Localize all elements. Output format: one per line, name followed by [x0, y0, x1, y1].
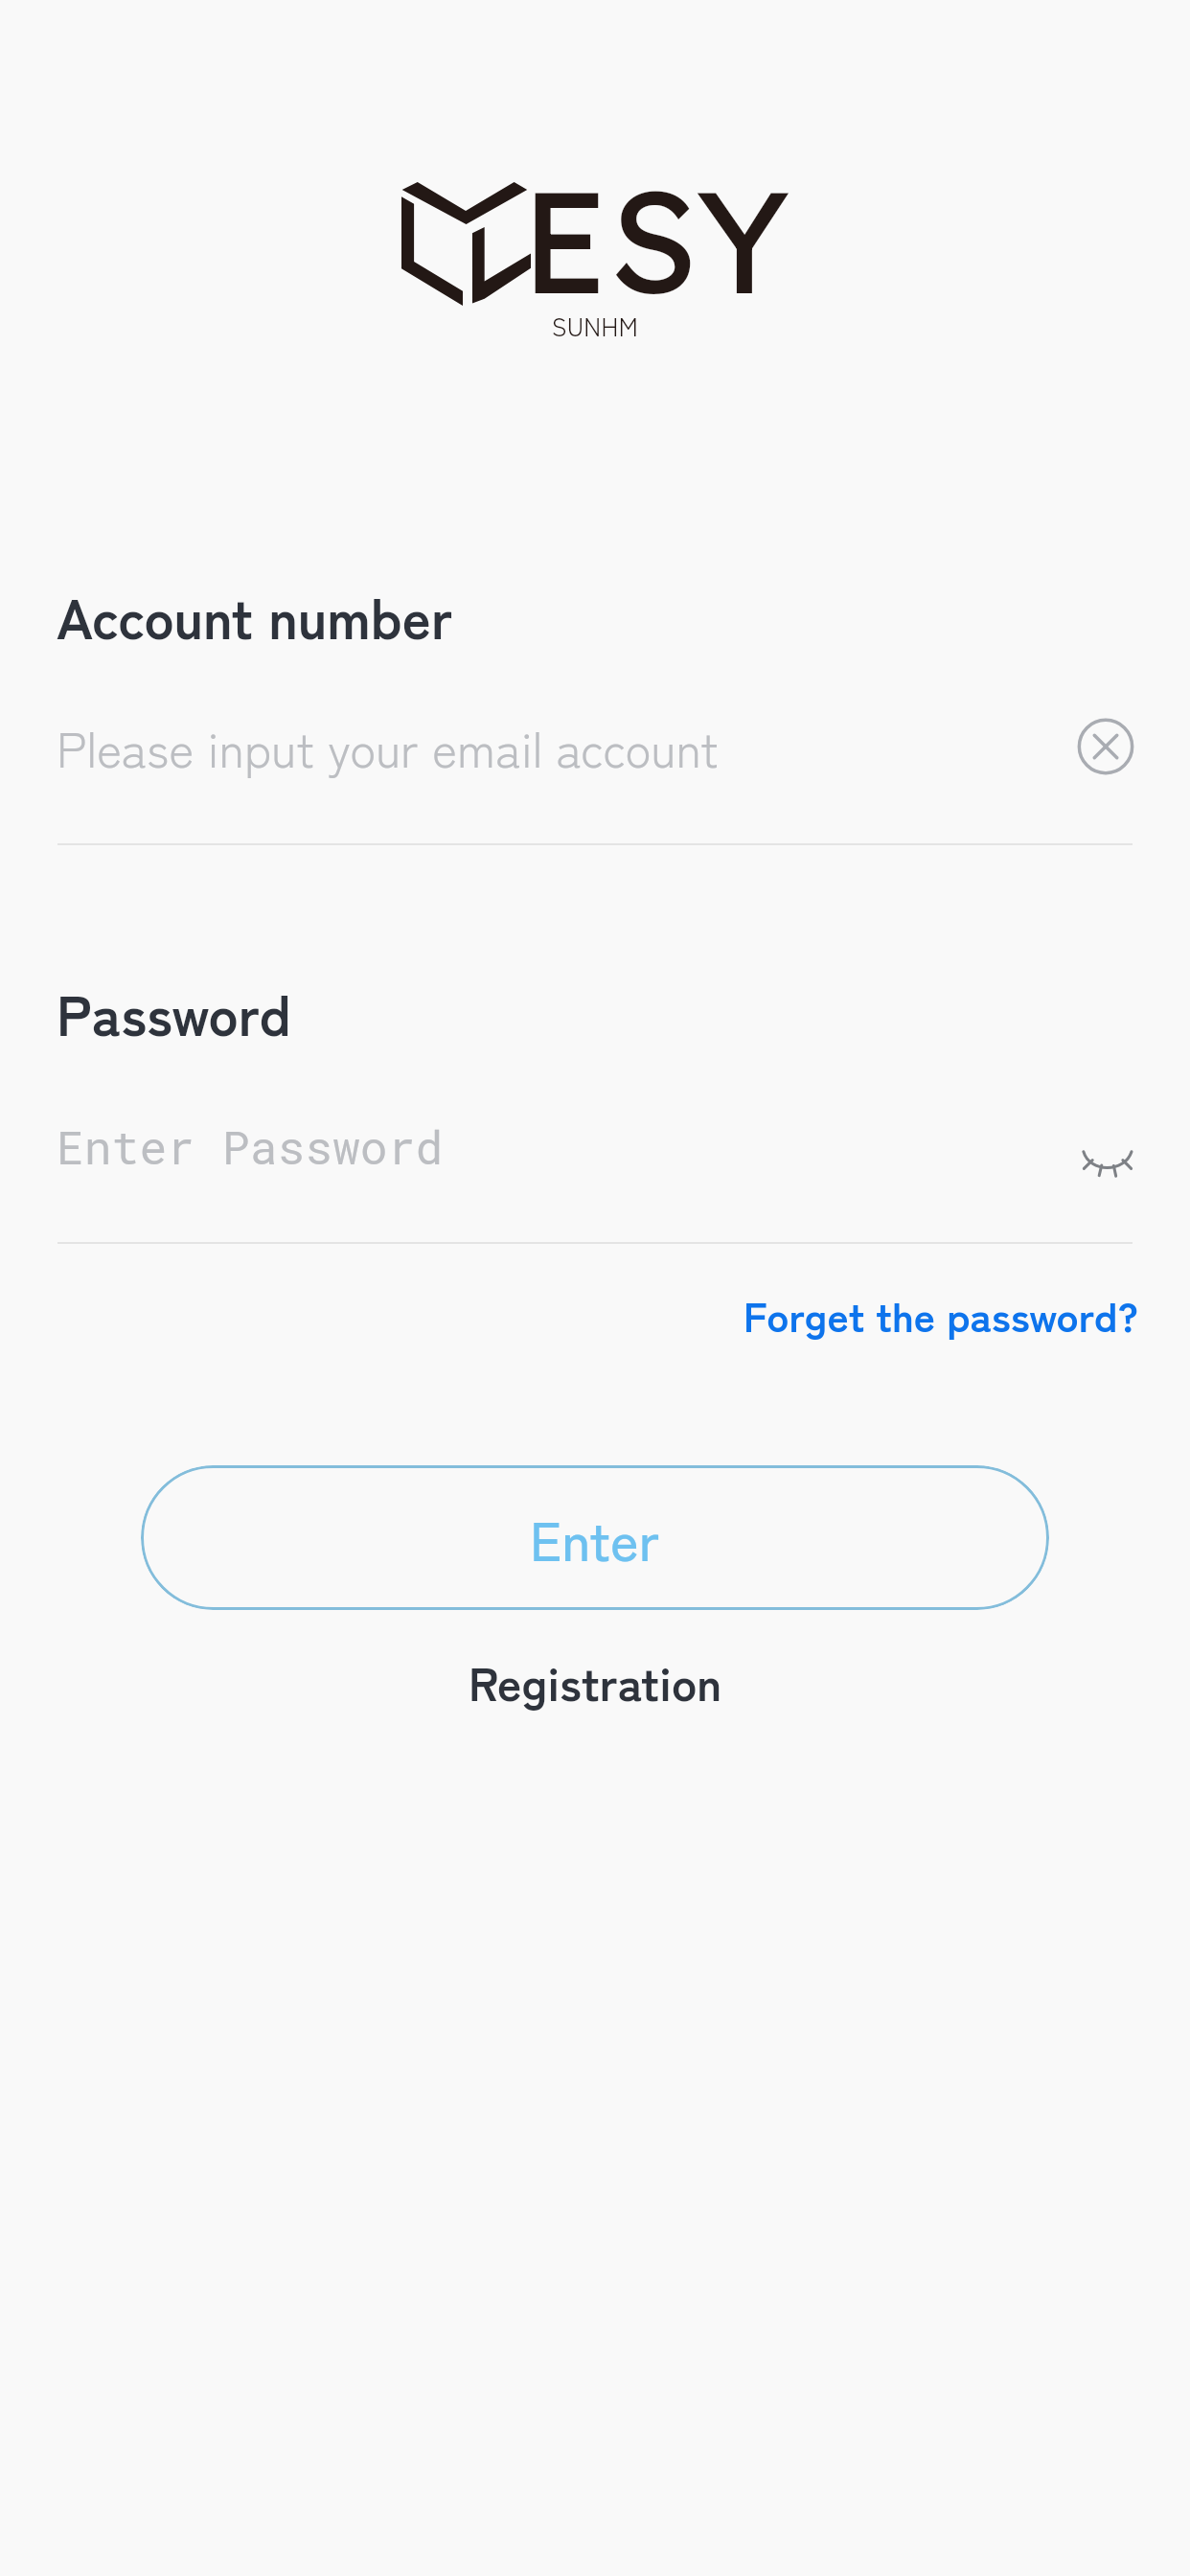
- button[interactable]: Clear account number: [1075, 716, 1136, 777]
- button[interactable]: Show password: [1066, 1137, 1147, 1190]
- staticText: Please input your email account: [57, 712, 719, 781]
- staticText: Password: [57, 972, 291, 1052]
- button[interactable]: Registration: [442, 1637, 749, 1724]
- staticText: Enter Password: [57, 1116, 444, 1177]
- button[interactable]: Enter: [141, 1465, 1049, 1610]
- staticText: Enter: [530, 1498, 660, 1577]
- button[interactable]: Forget the password?: [732, 1276, 1150, 1351]
- staticText: SUNHM: [0, 308, 1190, 344]
- staticText: ESY: [521, 150, 790, 329]
- staticText: Account number: [57, 575, 453, 655]
